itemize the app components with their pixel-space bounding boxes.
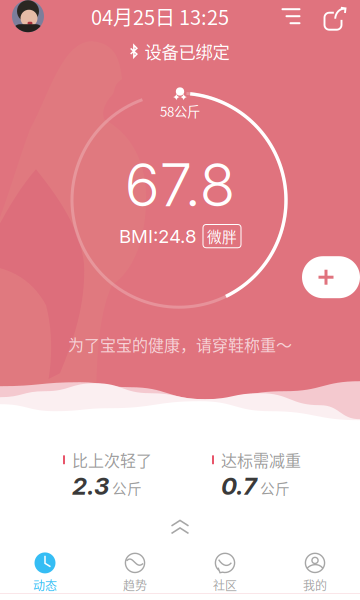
staticText: 设备已绑定 <box>144 39 229 64</box>
staticText: 2.3 <box>72 471 109 500</box>
staticText: 我的 <box>303 576 327 594</box>
staticText: BMI:24.8 <box>119 225 197 247</box>
staticText: 达标需减重 <box>221 448 301 471</box>
button[interactable]: Share <box>320 3 346 29</box>
button[interactable]: 动态 <box>0 547 90 599</box>
staticText: 0.7 <box>221 471 257 500</box>
staticText: 公斤 <box>260 477 290 498</box>
button[interactable]: 趋势 <box>90 547 180 599</box>
button[interactable]: 我的 <box>270 547 360 599</box>
staticText: 67.8 <box>124 149 235 220</box>
button[interactable]: Profile <box>12 0 44 32</box>
staticText: 公斤 <box>112 477 142 498</box>
staticText: 趋势 <box>123 576 147 594</box>
button[interactable]: 社区 <box>180 547 270 599</box>
staticText: 动态 <box>33 576 57 594</box>
staticText: 社区 <box>213 576 237 594</box>
staticText: 比上次轻了 <box>72 448 152 471</box>
button[interactable]: Expand <box>151 514 208 539</box>
staticText: 04月25日 13:25 <box>91 2 229 31</box>
staticText: 为了宝宝的健康，请穿鞋称重～ <box>68 333 292 356</box>
button[interactable]: Menu <box>276 1 306 31</box>
staticText: 58公斤 <box>160 101 200 120</box>
button[interactable]: Add record <box>302 256 360 298</box>
staticText: 微胖 <box>207 225 237 247</box>
